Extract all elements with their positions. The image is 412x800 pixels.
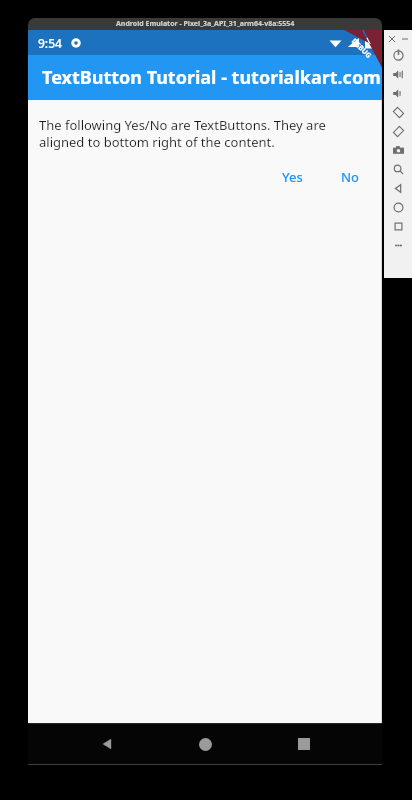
button[interactable]: Volume up bbox=[384, 65, 412, 84]
staticText: DEBUG bbox=[349, 37, 374, 61]
button[interactable]: Overview bbox=[384, 217, 412, 236]
staticText: Yes bbox=[282, 168, 303, 186]
staticText: The following Yes/No are TextButtons. Th… bbox=[39, 116, 371, 151]
button[interactable]: Back bbox=[384, 179, 412, 198]
button[interactable]: No bbox=[333, 162, 368, 192]
button[interactable]: Back bbox=[87, 724, 127, 764]
staticText: TextButton Tutorial - tutorialkart.com bbox=[42, 65, 381, 90]
button[interactable]: Screenshot bbox=[384, 141, 412, 160]
button[interactable]: Rotate left bbox=[384, 103, 412, 122]
button[interactable]: Recent apps bbox=[284, 724, 324, 764]
button[interactable]: Power bbox=[384, 46, 412, 65]
button[interactable]: Zoom bbox=[384, 160, 412, 179]
button[interactable]: Close bbox=[386, 33, 397, 44]
staticText: 9:54 bbox=[38, 35, 62, 51]
button[interactable]: Volume down bbox=[384, 84, 412, 103]
button[interactable]: Minimize bbox=[399, 33, 410, 44]
button[interactable]: Home bbox=[384, 198, 412, 217]
staticText: No bbox=[341, 168, 360, 186]
button[interactable]: More options bbox=[384, 236, 412, 255]
button[interactable]: Home bbox=[185, 724, 225, 764]
button[interactable]: Yes bbox=[274, 162, 311, 192]
button[interactable]: Rotate right bbox=[384, 122, 412, 141]
staticText: Android Emulator - Pixel_3a_API_31_arm64… bbox=[116, 19, 295, 29]
